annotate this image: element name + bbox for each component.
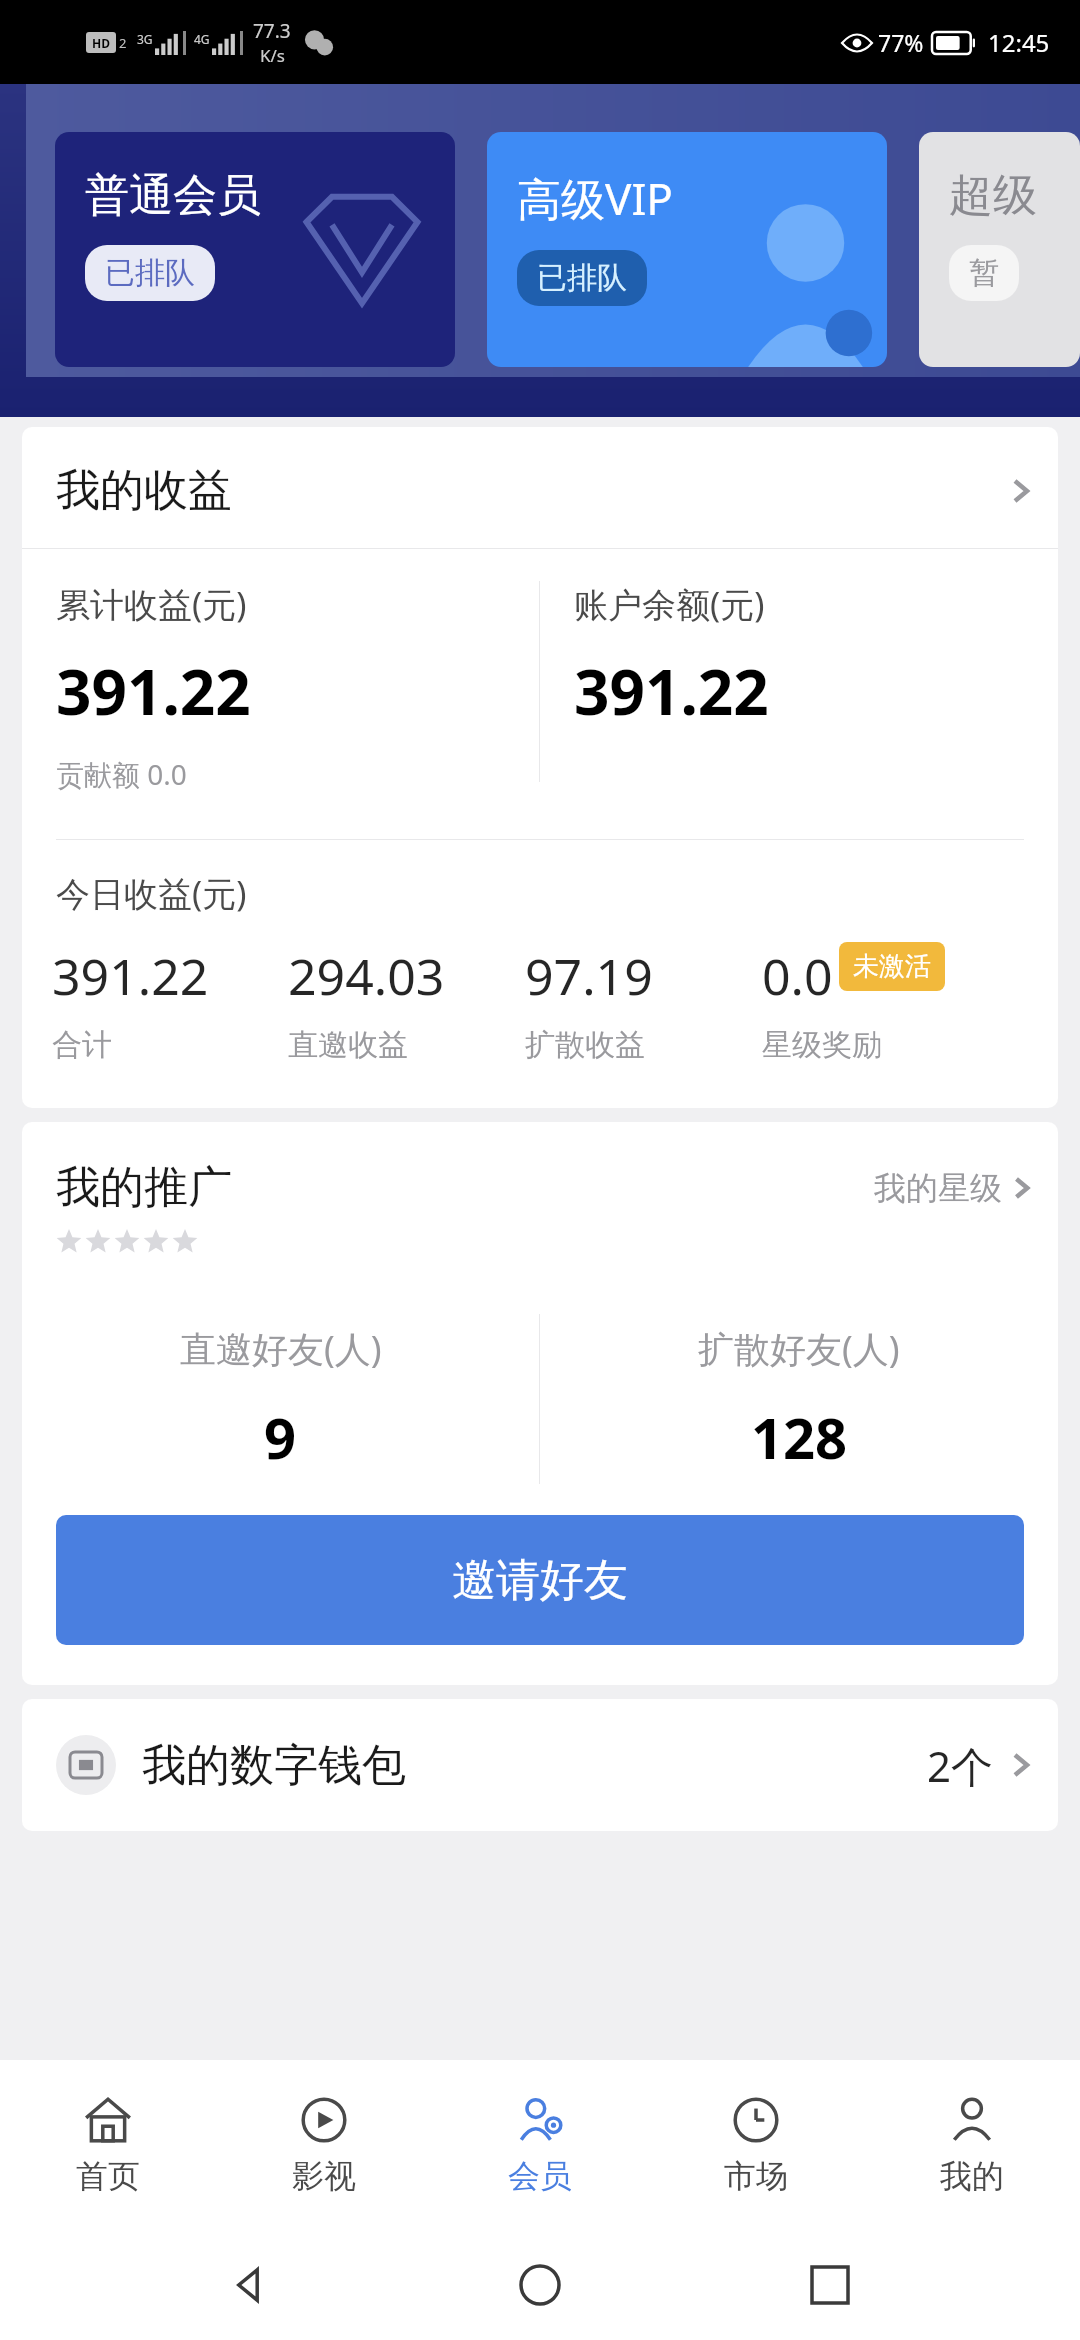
- staticText: 星级奖励: [762, 1026, 882, 1064]
- staticText: 391.22: [56, 649, 251, 733]
- staticText: 首页: [76, 2156, 140, 2196]
- button[interactable]: 超级: [919, 132, 1080, 367]
- button[interactable]: 影视: [216, 2060, 432, 2230]
- button[interactable]: 市场: [648, 2060, 864, 2230]
- staticText: 77.3: [253, 18, 291, 44]
- button[interactable]: 会员: [432, 2060, 648, 2230]
- staticText: 邀请好友: [452, 1553, 628, 1608]
- staticText: 我的: [940, 2156, 1004, 2196]
- button[interactable]: 未激活: [839, 942, 945, 991]
- staticText: 391.22: [574, 649, 769, 733]
- staticText: 我的数字钱包: [142, 1738, 406, 1793]
- staticText: 0.0: [762, 942, 833, 1010]
- button[interactable]: 我的: [864, 2060, 1080, 2230]
- staticText: K/s: [260, 44, 285, 67]
- staticText: 12:45: [988, 26, 1050, 59]
- button[interactable]: 我的星级: [874, 1168, 1030, 1208]
- staticText: 77%: [878, 27, 924, 58]
- staticText: 高级VIP: [517, 168, 673, 228]
- staticText: 普通会员: [85, 168, 261, 223]
- staticText: 391.22: [52, 942, 209, 1010]
- staticText: 扩散好友(人): [698, 1324, 900, 1373]
- staticText: 合计: [52, 1026, 112, 1064]
- staticText: 已排队: [537, 259, 627, 297]
- staticText: 我的推广: [56, 1160, 232, 1215]
- button[interactable]: Home: [500, 2245, 580, 2325]
- staticText: HD: [92, 35, 110, 51]
- staticText: 已排队: [105, 254, 195, 292]
- staticText: 我的收益: [56, 463, 232, 518]
- staticText: 我的星级: [874, 1168, 1002, 1208]
- staticText: 影视: [292, 2156, 356, 2196]
- button[interactable]: 普通会员: [55, 132, 455, 367]
- staticText: 直邀收益: [288, 1026, 408, 1064]
- staticText: 2: [119, 34, 127, 52]
- staticText: 超级: [949, 168, 1037, 223]
- staticText: 暂: [969, 254, 999, 292]
- staticText: 97.19: [525, 942, 653, 1010]
- button[interactable]: 高级VIP: [487, 132, 887, 367]
- staticText: 市场: [724, 2156, 788, 2196]
- staticText: 128: [751, 1399, 848, 1475]
- button[interactable]: Back: [210, 2245, 290, 2325]
- button[interactable]: 我的收益: [22, 427, 1058, 548]
- button[interactable]: 我的数字钱包: [22, 1699, 1058, 1831]
- staticText: 4G: [194, 31, 210, 47]
- staticText: 直邀好友(人): [180, 1324, 382, 1373]
- staticText: 2个: [927, 1737, 994, 1794]
- button[interactable]: 首页: [0, 2060, 216, 2230]
- staticText: 累计收益(元): [56, 581, 247, 627]
- button[interactable]: 邀请好友: [56, 1515, 1024, 1645]
- staticText: 今日收益(元): [56, 870, 247, 916]
- staticText: 会员: [508, 2156, 572, 2196]
- staticText: 贡献额 0.0: [56, 755, 187, 793]
- staticText: 未激活: [853, 950, 931, 983]
- staticText: 账户余额(元): [574, 581, 765, 627]
- button[interactable]: Recents: [790, 2245, 870, 2325]
- staticText: 9: [264, 1399, 297, 1475]
- staticText: 扩散收益: [525, 1026, 645, 1064]
- staticText: 3G: [137, 31, 153, 47]
- staticText: 294.03: [288, 942, 445, 1010]
